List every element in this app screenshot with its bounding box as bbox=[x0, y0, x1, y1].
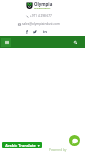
staticText: Olympia bbox=[34, 1, 53, 7]
button[interactable]: Facebook bbox=[24, 29, 29, 34]
button[interactable]: Arabic Translate ▾ bbox=[2, 142, 42, 148]
button[interactable]: Search bbox=[70, 37, 80, 47]
button[interactable]: Menu bbox=[1, 38, 11, 47]
staticText: Powered by bbox=[49, 148, 67, 152]
staticText: Arabic Translate ▾ bbox=[5, 143, 40, 148]
button[interactable]: Twitter bbox=[32, 29, 37, 34]
staticText: +971 4 298 677 bbox=[30, 14, 52, 18]
staticText: in bbox=[43, 29, 47, 34]
button[interactable]: WhatsApp chat bbox=[69, 135, 80, 146]
staticText: f bbox=[26, 29, 28, 34]
staticText: sales@olympiaindust.com bbox=[22, 22, 60, 26]
staticText: INTERNATIONAL bbox=[34, 7, 51, 10]
button[interactable]: LinkedIn bbox=[42, 29, 47, 34]
